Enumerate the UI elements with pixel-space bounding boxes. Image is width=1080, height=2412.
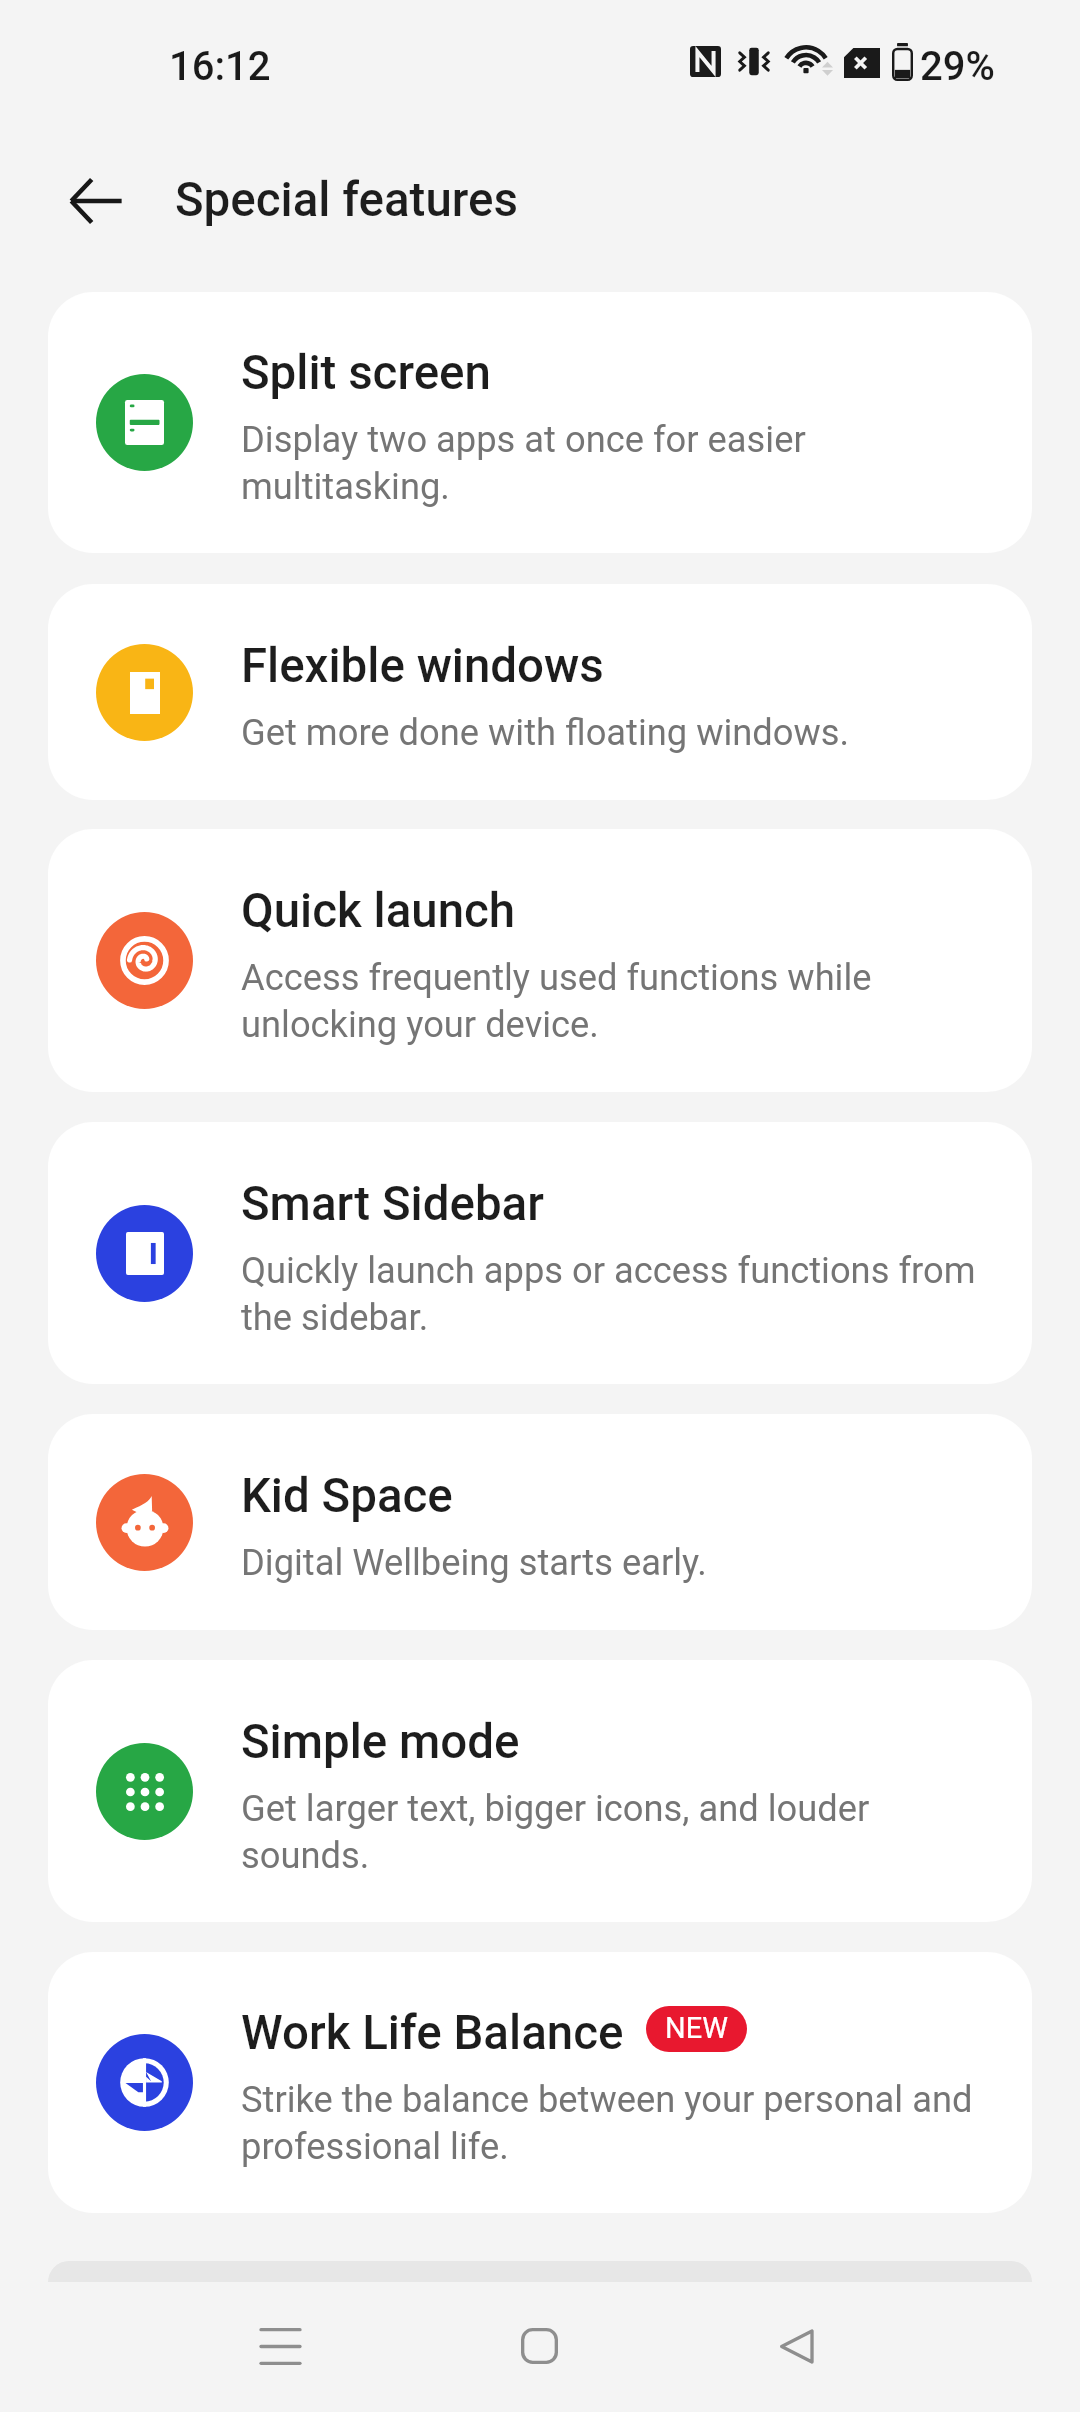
- button[interactable]: Flexible windows: [48, 584, 1032, 800]
- button[interactable]: Split screen: [48, 292, 1032, 553]
- button[interactable]: Recent apps: [230, 2296, 330, 2396]
- staticText: 16:12: [169, 43, 271, 90]
- button[interactable]: Kid Space: [48, 1414, 1032, 1630]
- staticText: 29%: [920, 43, 995, 90]
- button[interactable]: Home: [489, 2296, 589, 2396]
- staticText: Flexible windows: [241, 638, 604, 694]
- button[interactable]: Back: [746, 2296, 846, 2396]
- staticText: Kid Space: [241, 1468, 453, 1524]
- staticText: Quickly launch apps or access functions …: [241, 1246, 976, 1293]
- staticText: Quick launch: [241, 883, 516, 939]
- staticText: sounds.: [241, 1831, 370, 1878]
- button[interactable]: Simple mode: [48, 1660, 1032, 1922]
- staticText: Special features: [175, 172, 518, 228]
- button[interactable]: Quick launch: [48, 829, 1032, 1092]
- staticText: Work Life Balance: [241, 2005, 624, 2061]
- staticText: Access frequently used functions while: [241, 953, 872, 1000]
- staticText: Display two apps at once for easier: [241, 415, 806, 462]
- staticText: Strike the balance between your personal…: [241, 2075, 973, 2122]
- staticText: professional life.: [241, 2122, 509, 2169]
- staticText: NEW: [665, 2011, 728, 2045]
- staticText: unlocking your device.: [241, 1000, 599, 1047]
- staticText: multitasking.: [241, 462, 450, 509]
- staticText: Split screen: [241, 345, 491, 401]
- staticText: Get more done with floating windows.: [241, 708, 850, 755]
- button[interactable]: Work Life Balance: [48, 1952, 1032, 2213]
- staticText: Digital Wellbeing starts early.: [241, 1538, 707, 1585]
- staticText: Simple mode: [241, 1714, 520, 1770]
- staticText: Get larger text, bigger icons, and loude…: [241, 1784, 870, 1831]
- button[interactable]: Back: [48, 153, 144, 249]
- staticText: the sidebar.: [241, 1293, 429, 1340]
- staticText: Smart Sidebar: [241, 1176, 544, 1232]
- button[interactable]: Smart Sidebar: [48, 1122, 1032, 1384]
